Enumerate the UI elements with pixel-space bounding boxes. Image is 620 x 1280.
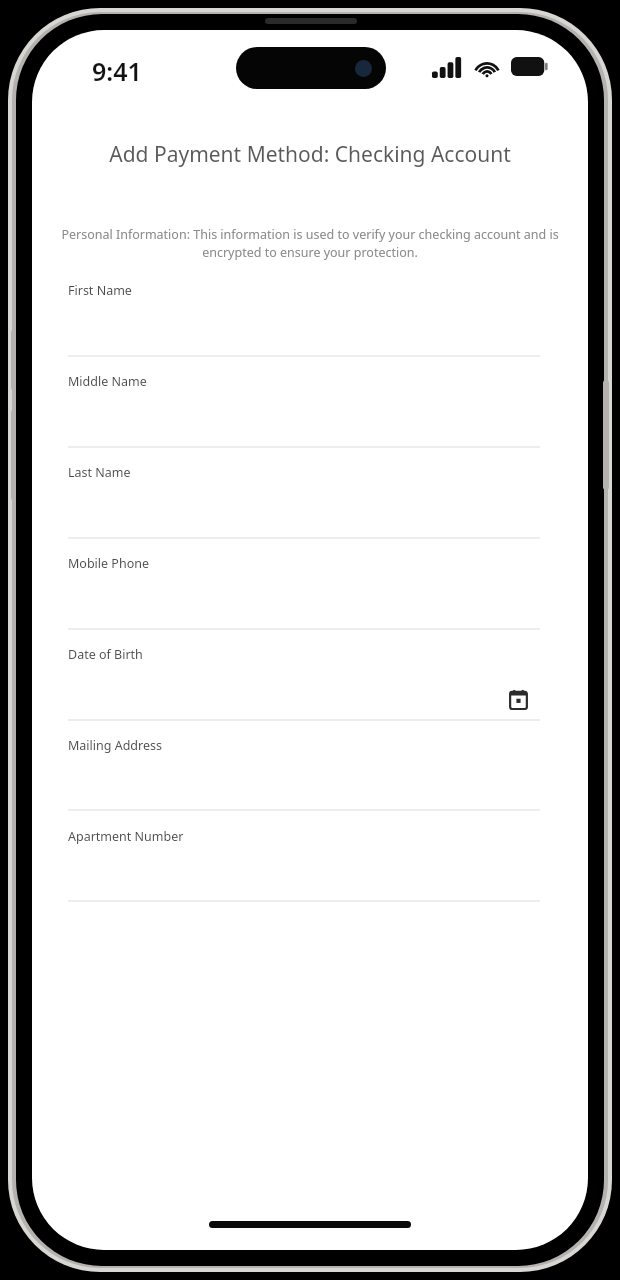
button[interactable]: [68, 456, 540, 541]
button[interactable]: [68, 729, 540, 813]
button[interactable]: [68, 638, 540, 723]
staticText: 9:41: [92, 54, 142, 88]
button[interactable]: [68, 820, 540, 904]
button[interactable]: [68, 365, 540, 450]
staticText: Last Name: [68, 464, 131, 481]
staticText: Middle Name: [68, 373, 147, 390]
staticText: Personal Information: This information i…: [54, 226, 566, 261]
button[interactable]: [68, 547, 540, 632]
staticText: Date of Birth: [68, 646, 143, 663]
staticText: Add Payment Method: Checking Account: [56, 140, 564, 169]
staticText: Apartment Number: [68, 828, 184, 845]
button[interactable]: [68, 274, 540, 359]
staticText: Mobile Phone: [68, 555, 149, 572]
staticText: First Name: [68, 282, 132, 299]
staticText: Mailing Address: [68, 737, 162, 754]
button[interactable]: Open date picker: [504, 685, 532, 713]
